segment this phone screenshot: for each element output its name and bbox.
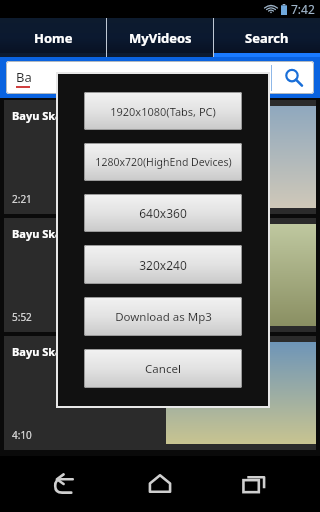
- staticText: 640x360: [139, 205, 187, 221]
- staticText: Cancel: [145, 361, 181, 377]
- button[interactable]: Cancel: [84, 349, 242, 388]
- button[interactable]: Search: [214, 18, 320, 57]
- staticText: 320x240: [139, 257, 187, 273]
- button[interactable]: 320x240: [84, 245, 242, 284]
- staticText: Home: [34, 29, 73, 47]
- button[interactable]: MyVideos: [107, 18, 213, 57]
- staticText: 5:52: [12, 310, 32, 324]
- staticText: Ba: [16, 68, 32, 86]
- staticText: Bayu Skak: [12, 226, 69, 241]
- button[interactable]: Home: [132, 462, 188, 506]
- button[interactable]: Recent apps: [226, 462, 282, 506]
- button[interactable]: Bayu Skak: [4, 336, 316, 450]
- staticText: Bayu Skak: [12, 108, 69, 123]
- button[interactable]: Back: [38, 462, 94, 506]
- button[interactable]: Search: [272, 61, 314, 94]
- button[interactable]: Bayu Skak: [4, 218, 316, 332]
- button[interactable]: 640x360: [84, 194, 242, 232]
- staticText: Bayu Skak: [12, 344, 69, 359]
- button[interactable]: 1280x720(HighEnd Devices): [84, 143, 242, 181]
- button[interactable]: Download as Mp3: [84, 297, 242, 336]
- button[interactable]: Bayu Skak: [4, 100, 316, 214]
- staticText: 1280x720(HighEnd Devices): [95, 155, 232, 169]
- staticText: 2:21: [12, 192, 32, 206]
- staticText: MyVideos: [129, 29, 192, 47]
- staticText: 1920x1080(Tabs, PC): [110, 104, 216, 119]
- button[interactable]: 1920x1080(Tabs, PC): [84, 92, 242, 130]
- staticText: Search: [245, 29, 289, 47]
- staticText: 4:10: [12, 428, 32, 442]
- button[interactable]: Home: [0, 18, 106, 57]
- staticText: Download as Mp3: [115, 309, 212, 325]
- staticText: 7:42: [291, 1, 315, 17]
